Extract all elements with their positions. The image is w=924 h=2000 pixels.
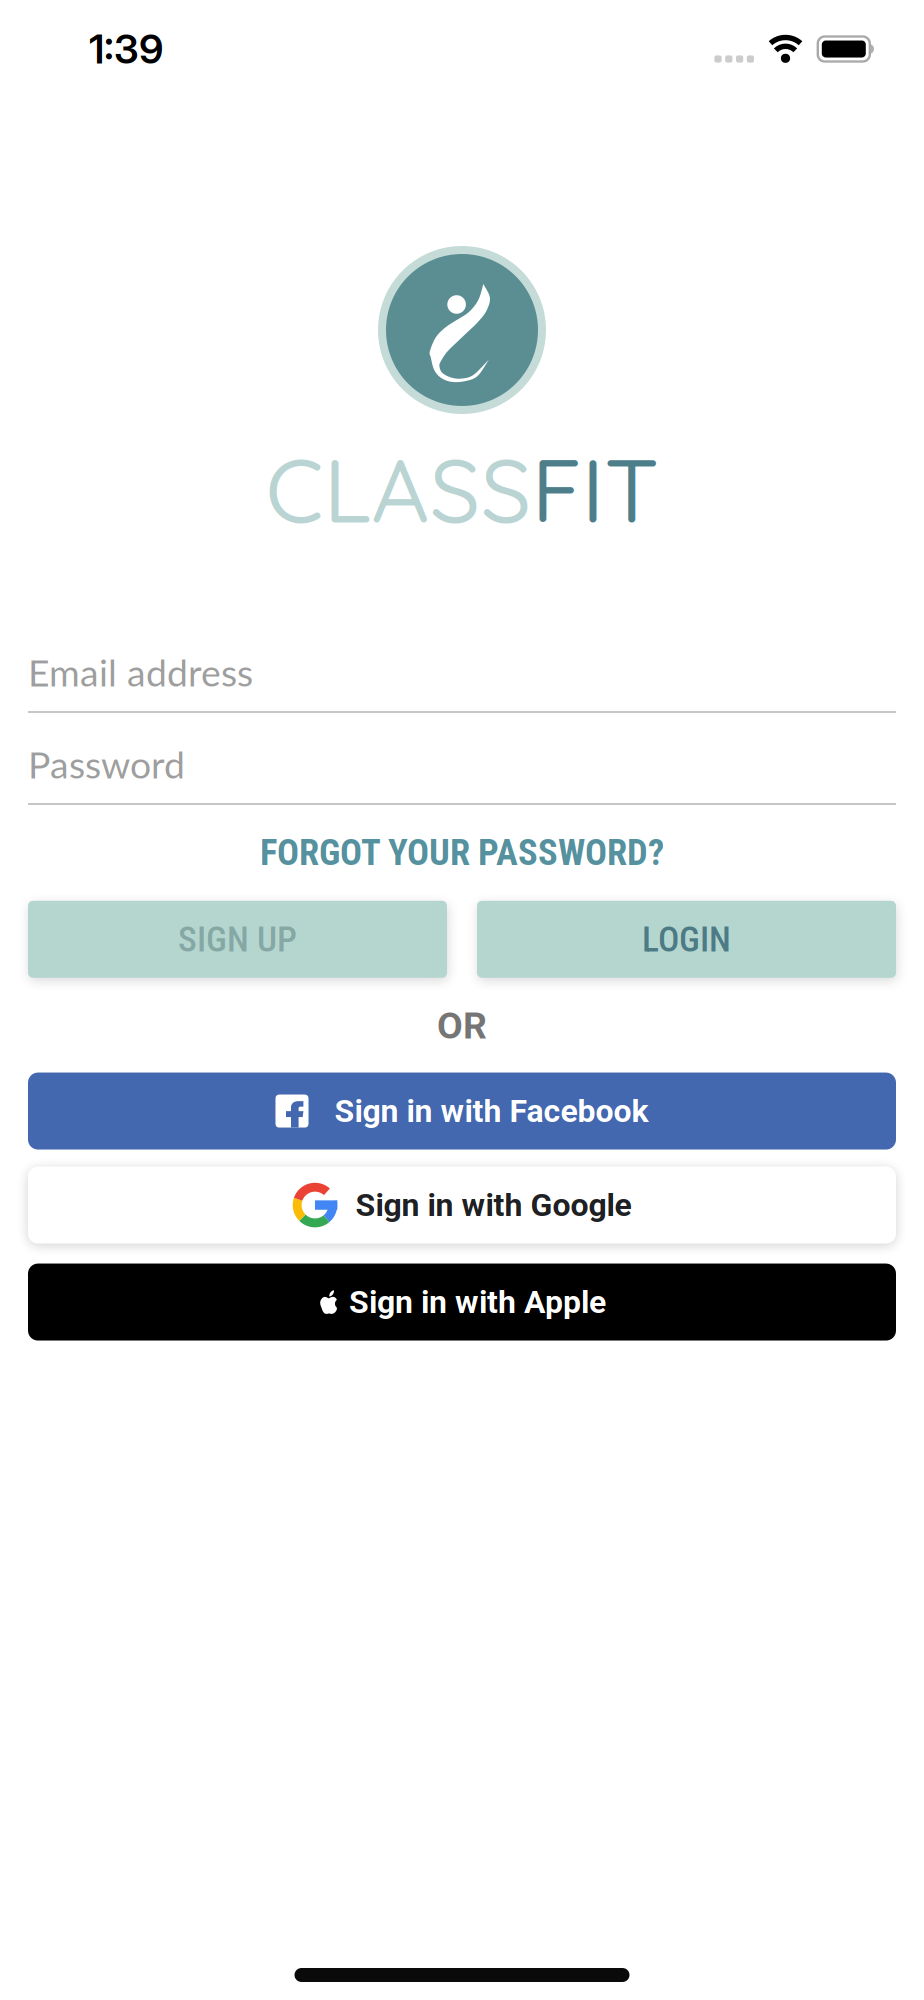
button[interactable]: SIGN UP <box>28 901 447 978</box>
button[interactable]: Password <box>0 739 924 805</box>
button[interactable]: Sign in with Apple <box>28 1264 896 1341</box>
button[interactable]: Sign in with Facebook <box>28 1073 896 1150</box>
staticText: LOGIN <box>642 918 731 960</box>
staticText: S <box>480 433 531 545</box>
staticText: 1:39 <box>89 25 163 73</box>
staticText: T <box>604 433 658 545</box>
staticText: SIGN UP <box>178 918 297 960</box>
staticText: Sign in with Google <box>355 1186 631 1224</box>
staticText: Sign in with Facebook <box>334 1092 648 1130</box>
staticText: Sign in with Apple <box>349 1283 606 1321</box>
staticText: OR <box>437 1004 487 1047</box>
staticText: L <box>323 433 371 545</box>
button[interactable]: LOGIN <box>477 901 896 978</box>
staticText: S <box>429 433 480 545</box>
button[interactable]: Email address <box>0 647 924 713</box>
staticText: Password <box>28 742 185 786</box>
staticText: Email address <box>28 650 253 694</box>
button[interactable]: FORGOT YOUR PASSWORD? <box>260 831 664 874</box>
staticText: A <box>371 433 429 545</box>
staticText: F <box>531 433 581 545</box>
staticText: C <box>265 433 323 545</box>
staticText: I <box>581 433 604 545</box>
staticText: FORGOT YOUR PASSWORD? <box>260 831 664 874</box>
button[interactable]: Sign in with Google <box>28 1167 896 1244</box>
